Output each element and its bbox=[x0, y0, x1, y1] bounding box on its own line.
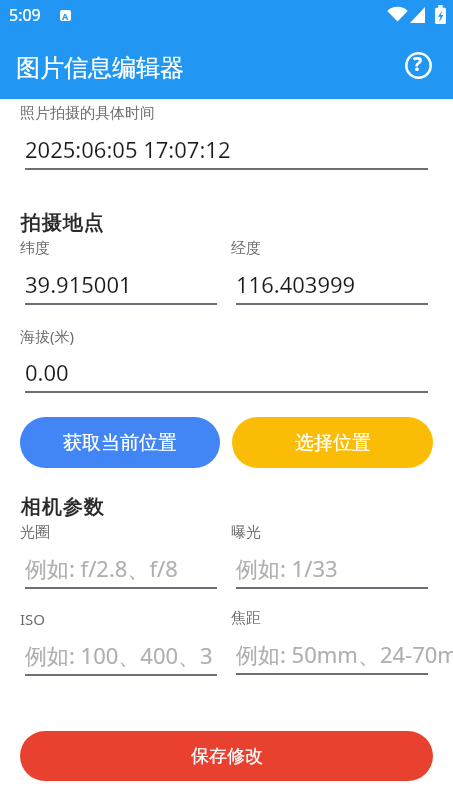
staticText: 纬度 bbox=[20, 239, 50, 258]
staticText: 曝光 bbox=[231, 523, 261, 542]
staticText: 例如: f/2.8、f/8 bbox=[25, 553, 178, 583]
staticText: 0.00 bbox=[25, 357, 69, 387]
staticText: 海拔(米) bbox=[20, 326, 75, 346]
button[interactable]: 选择位置 bbox=[232, 417, 433, 468]
staticText: 例如: 50mm、24-70mm bbox=[236, 639, 453, 669]
staticText: 5:09 bbox=[9, 4, 41, 26]
staticText: 图片信息编辑器 bbox=[16, 53, 184, 83]
button[interactable]: 获取当前位置 bbox=[20, 417, 220, 468]
staticText: 选择位置 bbox=[295, 431, 371, 455]
staticText: ISO bbox=[20, 609, 46, 629]
staticText: 光圈 bbox=[20, 523, 50, 542]
staticText: 例如: 100、400、3 bbox=[25, 640, 213, 670]
staticText: 拍摄地点 bbox=[20, 211, 104, 236]
staticText: 116.403999 bbox=[236, 269, 356, 299]
staticText: 照片拍摄的具体时间 bbox=[20, 104, 155, 123]
button[interactable]: Help bbox=[398, 45, 438, 85]
staticText: 例如: 1/33 bbox=[236, 553, 338, 583]
staticText: 39.915001 bbox=[25, 269, 132, 299]
staticText: 相机参数 bbox=[20, 495, 104, 520]
staticText: 保存修改 bbox=[191, 745, 263, 768]
staticText: ? bbox=[413, 51, 423, 77]
staticText: 获取当前位置 bbox=[63, 431, 177, 455]
staticText: 2025:06:05 17:07:12 bbox=[25, 134, 231, 164]
staticText: 焦距 bbox=[231, 609, 261, 628]
staticText: 经度 bbox=[231, 239, 261, 258]
button[interactable]: 保存修改 bbox=[20, 731, 433, 781]
staticText: A bbox=[62, 10, 69, 21]
